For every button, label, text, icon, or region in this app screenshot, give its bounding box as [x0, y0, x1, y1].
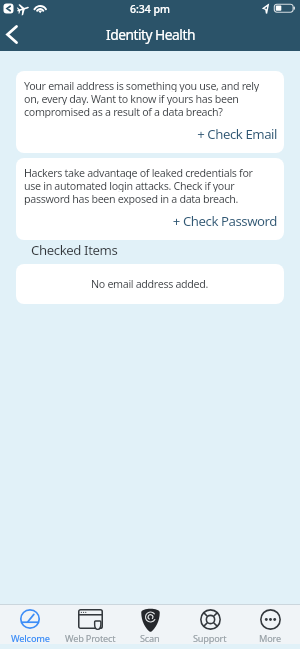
staticText: Support: [193, 632, 227, 644]
button[interactable]: Back: [0, 18, 24, 51]
staticText: Hackers take advantage of leaked credent…: [24, 166, 253, 179]
staticText: Welcome: [11, 632, 50, 644]
staticText: Web Protect: [65, 632, 116, 644]
button[interactable]: No email address added.: [16, 264, 284, 304]
staticText: password has been exposed in a data brea…: [24, 192, 239, 205]
button[interactable]: Welcome: [0, 605, 60, 644]
staticText: compromised as a result of a data breach…: [24, 105, 223, 118]
staticText: No email address added.: [91, 277, 209, 292]
staticText: Checked Items: [31, 241, 118, 258]
staticText: Scan: [140, 632, 160, 644]
staticText: + Check Email: [24, 125, 277, 143]
button[interactable]: Support: [180, 605, 240, 644]
button[interactable]: Hackers take advantage of leaked credent…: [16, 158, 284, 240]
button[interactable]: More: [240, 605, 300, 644]
staticText: More: [259, 632, 281, 644]
button[interactable]: Scan: [120, 605, 180, 644]
button[interactable]: Web Protect: [60, 605, 120, 644]
staticText: Your email address is something you use,…: [24, 79, 259, 92]
staticText: + Check Password: [24, 212, 277, 230]
staticText: Identity Health: [106, 25, 195, 44]
staticText: 6:34 pm: [130, 2, 171, 16]
button[interactable]: Your email address is something you use,…: [16, 71, 284, 153]
staticText: use in automated login attacks. Check if…: [24, 179, 235, 192]
staticText: on, every day. Want to know if yours has…: [24, 92, 239, 105]
